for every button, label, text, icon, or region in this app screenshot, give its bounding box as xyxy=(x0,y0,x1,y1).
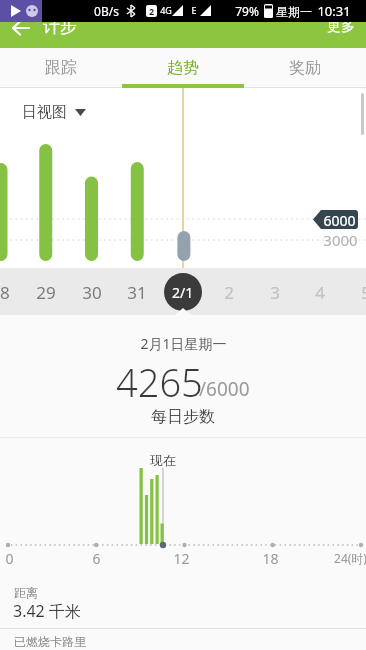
staticText: 更多 xyxy=(327,18,355,36)
staticText: 30 xyxy=(82,281,102,304)
button[interactable]: 跟踪 xyxy=(0,48,122,88)
staticText: 6 xyxy=(92,549,101,568)
staticText: 10:31 xyxy=(317,2,351,20)
staticText: /6000 xyxy=(199,376,250,402)
button[interactable]: 2/1 xyxy=(164,273,202,311)
staticText: 计步 xyxy=(43,16,77,37)
staticText: 4265 xyxy=(116,356,203,408)
staticText: 2/1 xyxy=(172,283,194,302)
staticText: 12 xyxy=(173,549,190,568)
staticText: 趋势 xyxy=(167,58,199,78)
staticText: 日视图 xyxy=(22,103,67,122)
button[interactable]: 奖励 xyxy=(244,48,366,88)
staticText: 2 xyxy=(224,281,234,304)
staticText: 星期一 xyxy=(276,4,312,19)
staticText: 79% xyxy=(235,3,259,19)
button[interactable]: 31 xyxy=(47,272,227,312)
button[interactable]: 趋势 xyxy=(122,48,244,88)
staticText: 现在 xyxy=(150,452,176,468)
staticText: 18 xyxy=(262,549,279,568)
button[interactable]: 29 xyxy=(0,272,136,312)
staticText: 奖励 xyxy=(289,58,321,78)
button[interactable] xyxy=(12,21,32,35)
staticText: 6000 xyxy=(323,211,356,230)
staticText: 已燃烧卡路里 xyxy=(14,634,86,649)
staticText: 距离 xyxy=(14,585,38,600)
staticText: 4G xyxy=(160,4,172,16)
staticText: 0B/s xyxy=(94,3,119,19)
staticText: 28 xyxy=(0,281,10,304)
staticText: 3000 xyxy=(323,230,358,250)
staticText: 每日步数 xyxy=(151,407,215,427)
staticText: 31 xyxy=(127,281,147,304)
button[interactable]: 30 xyxy=(2,272,182,312)
staticText: 跟踪 xyxy=(45,58,77,78)
staticText: 2 xyxy=(149,5,155,17)
staticText: 4 xyxy=(315,281,325,304)
staticText: 3.42 千米 xyxy=(13,600,81,622)
button[interactable]: 更多 xyxy=(251,7,366,47)
staticText: E xyxy=(191,4,197,16)
staticText: 3 xyxy=(270,281,280,304)
staticText: 29 xyxy=(36,281,56,304)
staticText: 0 xyxy=(5,549,14,568)
staticText: 24(时) xyxy=(334,550,366,566)
staticText: 2月1日星期一 xyxy=(140,334,227,353)
staticText: 5 xyxy=(361,281,366,304)
